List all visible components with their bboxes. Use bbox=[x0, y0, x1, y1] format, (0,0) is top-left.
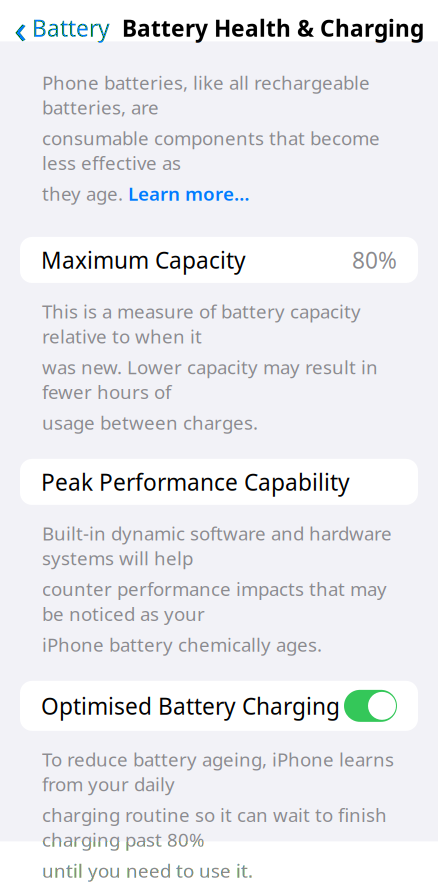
button[interactable]: Maximum Capacity bbox=[20, 237, 418, 283]
button[interactable]: Learn more… bbox=[128, 181, 250, 206]
staticText: usage between charges. bbox=[42, 410, 258, 435]
staticText: they age. bbox=[42, 181, 123, 206]
staticText: 80% bbox=[352, 245, 397, 275]
staticText: was new. Lower capacity may result in fe… bbox=[42, 354, 378, 404]
button[interactable]: Optimised Battery Charging bbox=[20, 681, 418, 731]
staticText: Learn more… bbox=[128, 181, 250, 206]
staticText: Maximum Capacity bbox=[41, 245, 246, 275]
button[interactable]: Peak Performance Capability bbox=[20, 459, 418, 505]
staticText: consumable components that become less e… bbox=[42, 126, 380, 175]
staticText: This is a measure of battery capacity re… bbox=[42, 299, 361, 349]
staticText: Optimised Battery Charging bbox=[41, 691, 340, 721]
staticText: counter performance impacts that may be … bbox=[42, 576, 387, 626]
button[interactable]: ‹ bbox=[0, 0, 116, 58]
staticText: until you need to use it. bbox=[42, 858, 253, 883]
staticText: Built-in dynamic software and hardware s… bbox=[42, 521, 392, 570]
staticText: Battery Health & Charging bbox=[122, 13, 424, 43]
staticText: To reduce battery ageing, iPhone learns … bbox=[42, 747, 394, 796]
staticText: Phone batteries, like all rechargeable b… bbox=[42, 70, 370, 120]
staticText: ‹ bbox=[14, 1, 27, 54]
staticText: iPhone battery chemically ages. bbox=[42, 632, 322, 657]
staticText: Battery bbox=[32, 13, 110, 43]
staticText: Peak Performance Capability bbox=[41, 467, 350, 497]
staticText: charging routine so it can wait to finis… bbox=[42, 802, 387, 852]
